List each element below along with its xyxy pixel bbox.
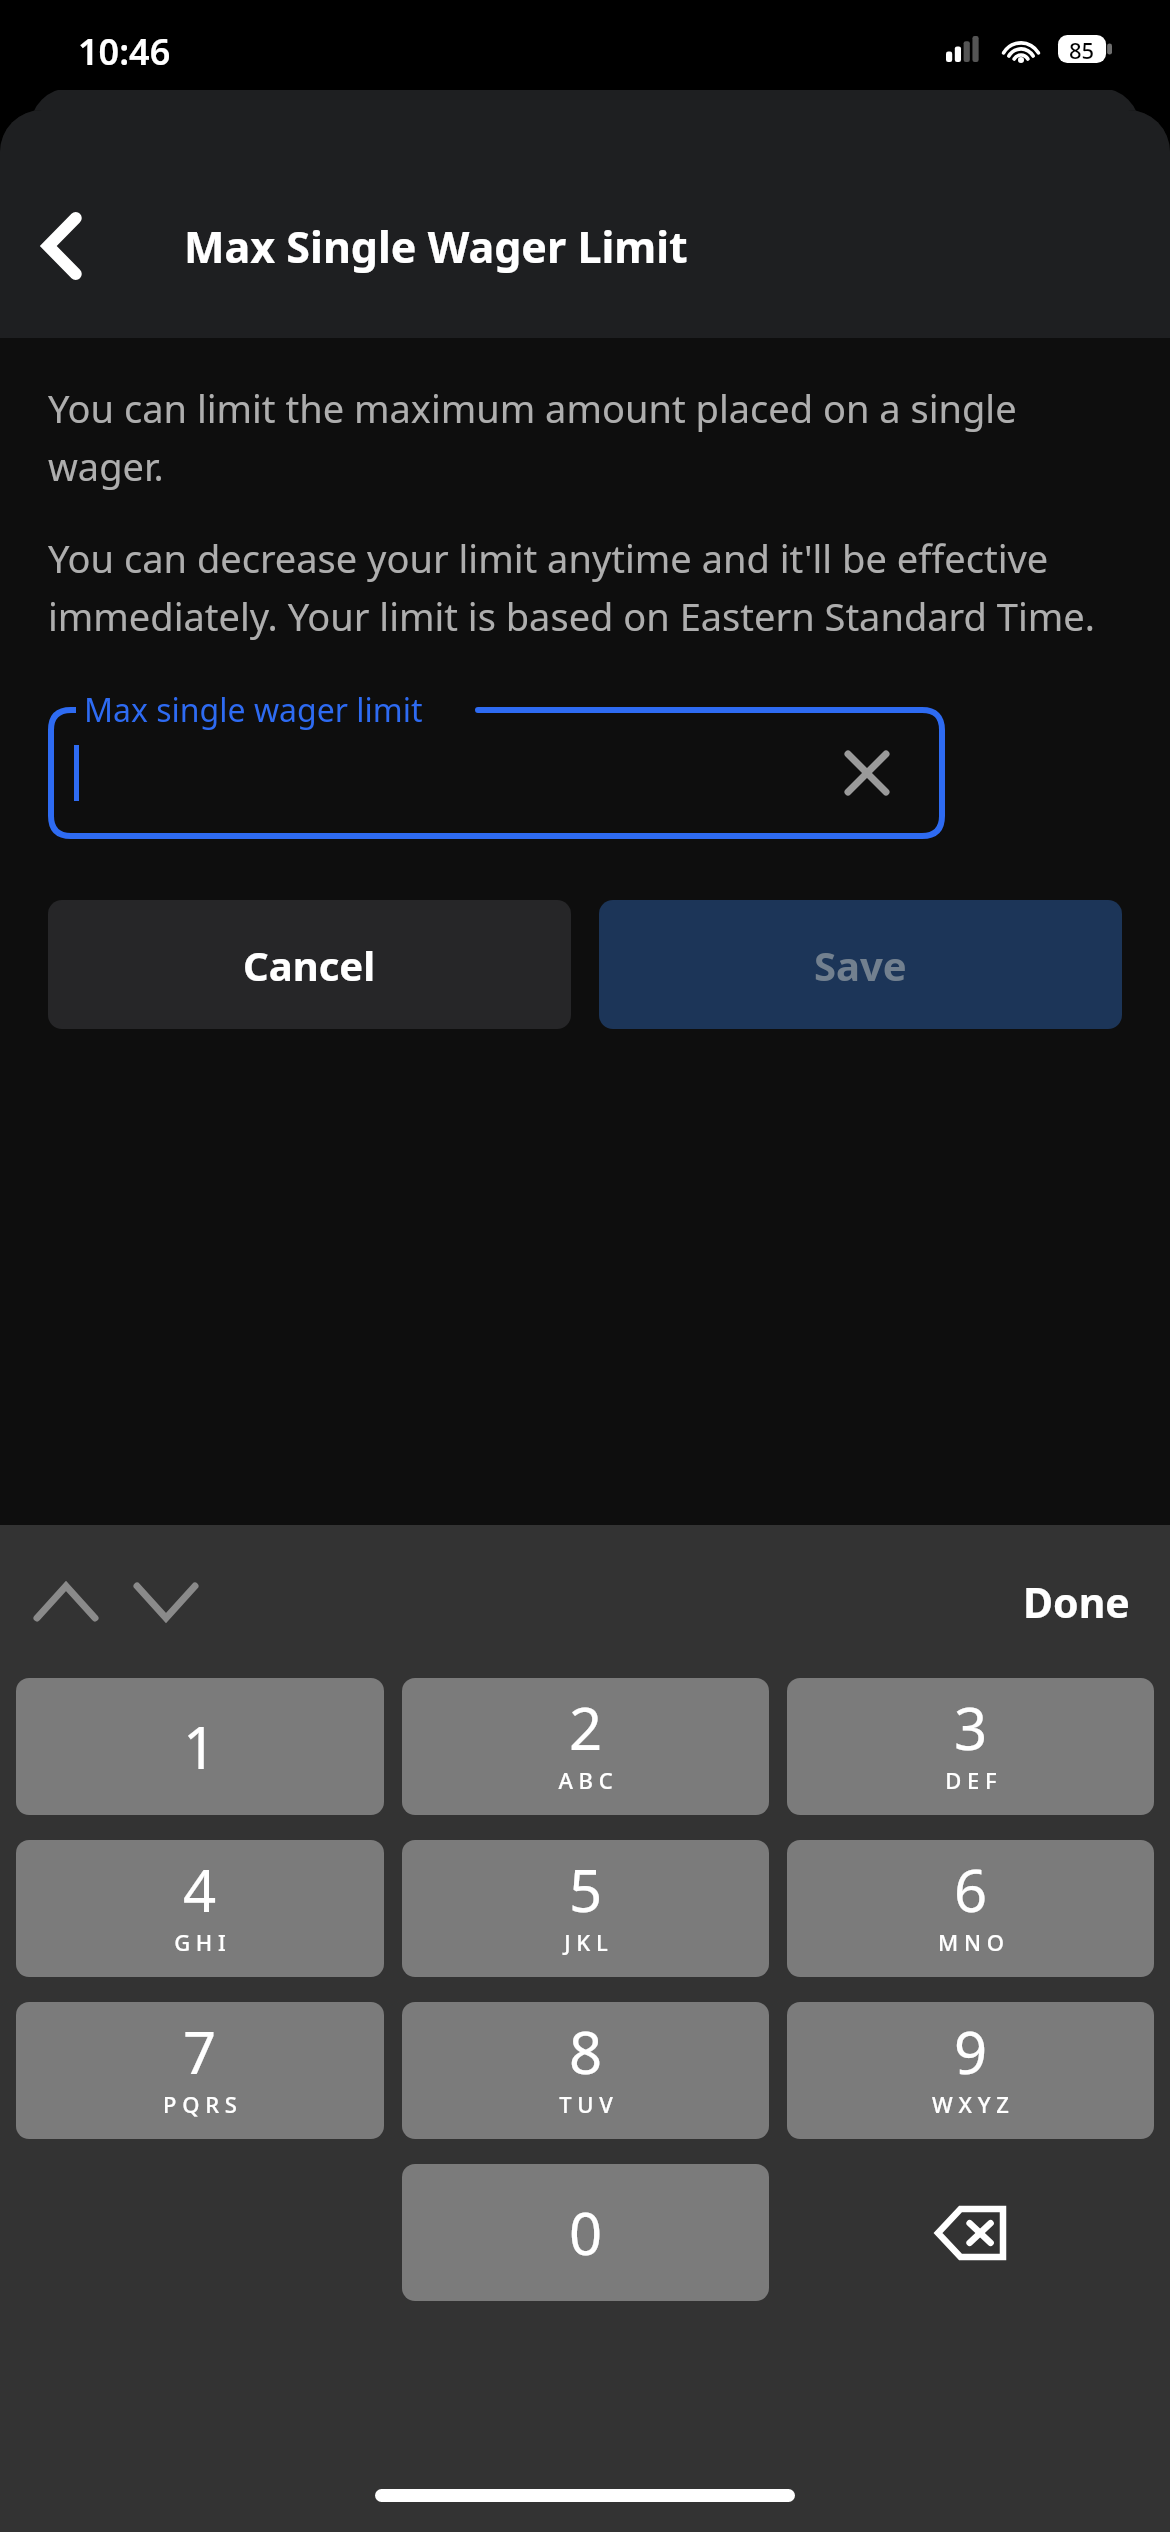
button[interactable]: Done [1023, 1574, 1130, 1630]
staticText: 10:46 [78, 27, 171, 76]
staticText: Max Single Wager Limit [184, 217, 688, 276]
staticText: 7 [183, 2012, 217, 2091]
staticText: 2 [569, 1688, 603, 1767]
button[interactable]: Clear text [833, 739, 901, 807]
staticText: 0 [569, 2193, 603, 2272]
staticText: G H I [174, 1927, 226, 1957]
button[interactable]: 6 [787, 1840, 1154, 1977]
staticText: Max single wager limit [84, 688, 423, 732]
button[interactable]: Next field [116, 1552, 216, 1652]
button[interactable]: Max single wager limit [48, 688, 945, 838]
staticText: 9 [954, 2012, 988, 2091]
staticText: Save [814, 938, 907, 992]
staticText: 1 [183, 1707, 217, 1786]
button[interactable]: Previous field [16, 1552, 116, 1652]
button[interactable]: 5 [402, 1840, 769, 1977]
button[interactable]: Back [16, 200, 108, 292]
staticText: D E F [945, 1765, 997, 1795]
button[interactable]: 4 [16, 1840, 384, 1977]
staticText: Cancel [243, 938, 376, 992]
staticText: You can limit the maximum amount placed … [48, 382, 1122, 492]
staticText: J K L [564, 1927, 608, 1957]
staticText: P Q R S [163, 2089, 237, 2119]
button[interactable]: 8 [402, 2002, 769, 2139]
staticText: Done [1023, 1574, 1130, 1630]
staticText: 4 [183, 1850, 217, 1929]
staticText: M N O [938, 1927, 1004, 1957]
staticText: 3 [954, 1688, 988, 1767]
staticText: 85 [1069, 35, 1095, 63]
staticText: A B C [558, 1765, 613, 1795]
button[interactable]: 7 [16, 2002, 384, 2139]
button[interactable]: 1 [16, 1678, 384, 1815]
staticText: 6 [954, 1850, 988, 1929]
staticText: 5 [569, 1850, 603, 1929]
staticText: W X Y Z [932, 2089, 1009, 2119]
button[interactable]: 9 [787, 2002, 1154, 2139]
button[interactable]: 3 [787, 1678, 1154, 1815]
staticText: You can decrease your limit anytime and … [48, 532, 1122, 642]
button[interactable]: Save [599, 900, 1122, 1029]
button[interactable]: Backspace [787, 2164, 1154, 2301]
button[interactable]: 0 [402, 2164, 769, 2301]
button[interactable]: 2 [402, 1678, 769, 1815]
button[interactable]: Cancel [48, 900, 571, 1029]
staticText: T U V [559, 2089, 613, 2119]
staticText: 8 [569, 2012, 603, 2091]
